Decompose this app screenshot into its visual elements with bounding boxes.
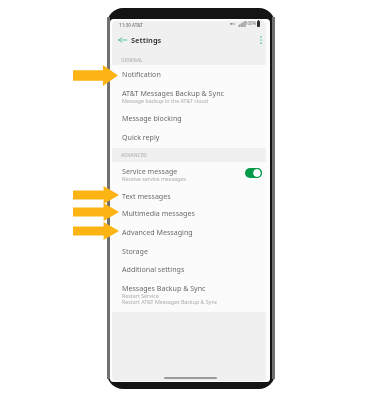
button[interactable]: Message blocking	[112, 108, 266, 128]
button[interactable]: Notification	[112, 65, 266, 85]
staticText: Advanced Messaging	[122, 227, 193, 237]
staticText: Receive service messages	[122, 175, 186, 182]
staticText: Multimedia messages	[122, 208, 195, 218]
button[interactable]: Back	[115, 33, 129, 47]
staticText: Restart AT&T Messages Backup & Sync	[122, 298, 218, 305]
staticText: Notification	[122, 69, 161, 79]
button[interactable]: Messages Backup & Sync	[112, 279, 266, 312]
staticText: AT&T Messages Backup & Sync	[122, 88, 224, 98]
button[interactable]: Additional settings	[112, 260, 266, 279]
staticText: Message blocking	[122, 113, 182, 123]
button[interactable]: Quick reply	[112, 128, 266, 148]
button[interactable]: Multimedia messages	[112, 205, 266, 223]
staticText: GENERAL	[121, 57, 143, 64]
button[interactable]: More options	[254, 33, 267, 46]
button[interactable]: Service message	[112, 162, 266, 186]
button[interactable]: Text messages	[112, 186, 266, 205]
button[interactable]: AT&T Messages Backup & Sync	[112, 85, 266, 109]
button[interactable]: Service message toggle	[245, 168, 262, 178]
staticText: Messages Backup & Sync	[122, 283, 206, 293]
staticText: 100%	[245, 20, 257, 26]
staticText: ADVANCED	[121, 152, 147, 159]
staticText: Settings	[131, 35, 162, 45]
staticText: Message backup in the AT&T cloud	[122, 97, 208, 104]
button[interactable]: Advanced Messaging	[112, 223, 266, 242]
button[interactable]: Storage	[112, 241, 266, 260]
staticText: 11:30 AT&T	[119, 22, 143, 28]
staticText: Service message	[122, 166, 178, 176]
staticText: Quick reply	[122, 132, 160, 142]
staticText: Storage	[122, 246, 148, 256]
staticText: Text messages	[122, 191, 171, 201]
staticText: Restart Service	[122, 292, 159, 299]
staticText: Additional settings	[122, 264, 185, 274]
